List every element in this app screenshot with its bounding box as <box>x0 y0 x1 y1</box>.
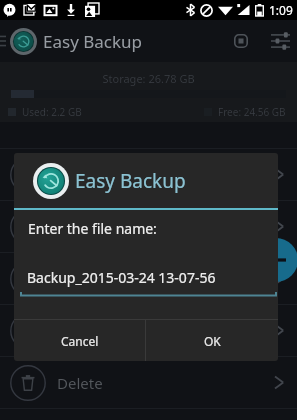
button[interactable]: Export <box>0 305 297 356</box>
staticText: Enter the file name: <box>28 219 157 238</box>
button[interactable]: Restore <box>0 201 297 252</box>
staticText: OK <box>204 333 221 349</box>
staticText: Export <box>57 321 104 341</box>
button[interactable]: OK <box>146 320 278 361</box>
staticText: Backup_2015-03-24 13-07-56 <box>27 268 216 287</box>
staticText: Used: 2.2 GB <box>22 105 82 119</box>
staticText: Free: 24.56 GB <box>218 105 286 119</box>
staticText: Archive <box>57 269 109 289</box>
button[interactable]: Cancel <box>14 320 145 361</box>
staticText: Cancel <box>61 333 99 349</box>
staticText: Restore <box>57 217 111 237</box>
button[interactable]: Settings <box>265 26 295 56</box>
staticText: Storage: 26.78 GB <box>0 71 297 86</box>
staticText: Easy Backup <box>43 30 143 53</box>
button[interactable]: Archive <box>0 253 297 304</box>
staticText: Easy Backup <box>75 168 186 194</box>
button[interactable]: Navigation menu <box>0 20 8 62</box>
staticText: 1:09 <box>269 2 293 18</box>
button[interactable]: Backup <box>0 149 297 200</box>
button[interactable]: Select <box>226 26 256 56</box>
staticText: Delete <box>57 373 103 393</box>
staticText: Backup <box>57 165 109 185</box>
button[interactable]: Delete <box>0 357 297 408</box>
button[interactable]: New backup <box>254 238 297 282</box>
